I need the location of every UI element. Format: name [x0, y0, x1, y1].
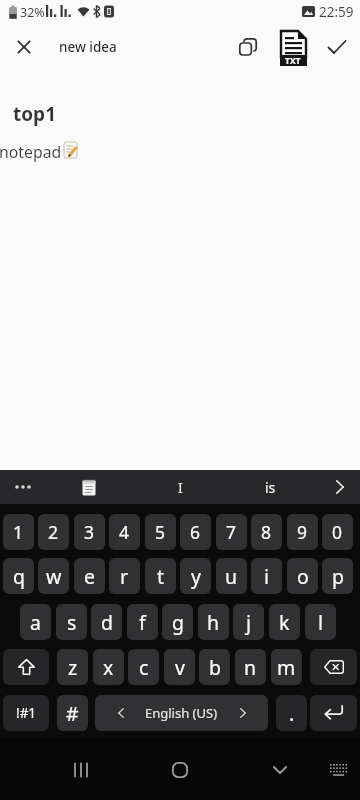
staticText: e	[84, 563, 95, 590]
staticText: q	[13, 563, 25, 590]
button[interactable]: 8	[251, 514, 282, 550]
staticText: a	[30, 609, 41, 636]
staticText: new idea	[59, 38, 117, 56]
staticText: top1	[13, 101, 56, 127]
staticText: d	[101, 609, 113, 636]
staticText: l	[318, 609, 324, 636]
button[interactable]: I	[144, 470, 216, 504]
staticText: n	[244, 654, 257, 681]
button[interactable]: h	[198, 604, 229, 640]
staticText: I	[178, 478, 183, 497]
button[interactable]: #	[57, 695, 88, 731]
button[interactable]: m	[271, 649, 302, 685]
button[interactable]: English (US)	[95, 695, 268, 731]
staticText: 0	[332, 520, 343, 544]
button[interactable]: c	[128, 649, 159, 685]
staticText: r	[120, 563, 129, 590]
button[interactable]: 7	[216, 514, 247, 550]
staticText: y	[191, 563, 201, 590]
button[interactable]	[72, 470, 106, 504]
staticText: w	[46, 563, 62, 590]
button[interactable]	[323, 33, 351, 61]
button[interactable]	[6, 470, 40, 504]
button[interactable]: v	[164, 649, 195, 685]
button[interactable]	[62, 754, 100, 786]
staticText: b	[209, 654, 221, 681]
button[interactable]: y	[180, 558, 211, 594]
staticText: 1	[13, 520, 24, 544]
button[interactable]	[10, 33, 38, 61]
button[interactable]: x	[93, 649, 124, 685]
staticText: .	[289, 700, 295, 727]
button[interactable]: q	[3, 558, 34, 594]
button[interactable]: 9	[287, 514, 318, 550]
staticText: u	[225, 563, 238, 590]
button[interactable]: .	[276, 695, 307, 731]
staticText: 4	[119, 520, 130, 544]
button[interactable]: o	[287, 558, 318, 594]
button[interactable]: TXT	[276, 28, 310, 68]
button[interactable]: e	[74, 558, 105, 594]
button[interactable]	[261, 754, 299, 786]
button[interactable]: t	[145, 558, 176, 594]
button[interactable]: 6	[180, 514, 211, 550]
button[interactable]: d	[91, 604, 122, 640]
button[interactable]: 4	[109, 514, 140, 550]
staticText: 2	[48, 520, 59, 544]
staticText: g	[172, 609, 184, 636]
staticText: i	[264, 563, 270, 590]
button[interactable]: u	[216, 558, 247, 594]
button[interactable]: s	[56, 604, 87, 640]
button[interactable]: !#1	[3, 695, 49, 731]
staticText: 9	[297, 520, 308, 544]
staticText: 7	[226, 520, 237, 544]
button[interactable]: l	[305, 604, 336, 640]
staticText: t	[157, 563, 165, 590]
button[interactable]: w	[38, 558, 69, 594]
button[interactable]	[324, 756, 354, 784]
button[interactable]: f	[127, 604, 158, 640]
button[interactable]	[322, 470, 358, 504]
staticText: 8	[261, 520, 272, 544]
staticText: !#1	[16, 704, 37, 722]
button[interactable]: z	[57, 649, 88, 685]
button[interactable]: 0	[322, 514, 353, 550]
button[interactable]: r	[109, 558, 140, 594]
staticText: z	[68, 654, 78, 681]
staticText: 32%	[20, 4, 45, 21]
button[interactable]	[310, 695, 357, 731]
button[interactable]	[310, 649, 357, 685]
staticText: j	[246, 609, 252, 636]
button[interactable]: p	[322, 558, 353, 594]
button[interactable]: j	[233, 604, 264, 640]
staticText: #	[66, 700, 79, 727]
staticText: v	[175, 654, 185, 681]
button[interactable]: 1	[3, 514, 34, 550]
button[interactable]	[233, 33, 263, 61]
button[interactable]: b	[199, 649, 230, 685]
staticText: m	[277, 654, 296, 681]
button[interactable]	[3, 649, 49, 685]
button[interactable]: 5	[145, 514, 176, 550]
staticText: s	[67, 609, 77, 636]
staticText: TXT	[285, 55, 301, 67]
staticText: 22:59	[319, 3, 354, 21]
button[interactable]: 2	[38, 514, 69, 550]
button[interactable]: 3	[74, 514, 105, 550]
button[interactable]	[161, 754, 199, 786]
button[interactable]: k	[269, 604, 300, 640]
button[interactable]: i	[251, 558, 282, 594]
button[interactable]: n	[235, 649, 266, 685]
staticText: is	[265, 478, 276, 497]
staticText: 6	[190, 520, 201, 544]
staticText: h	[207, 609, 220, 636]
staticText: x	[103, 654, 114, 681]
staticText: p	[332, 563, 344, 590]
button[interactable]: a	[20, 604, 51, 640]
button[interactable]: is	[234, 470, 306, 504]
staticText: f	[139, 609, 146, 636]
button[interactable]: g	[162, 604, 193, 640]
staticText: 3	[84, 520, 95, 544]
staticText: o	[297, 563, 309, 590]
staticText: c	[139, 654, 149, 681]
